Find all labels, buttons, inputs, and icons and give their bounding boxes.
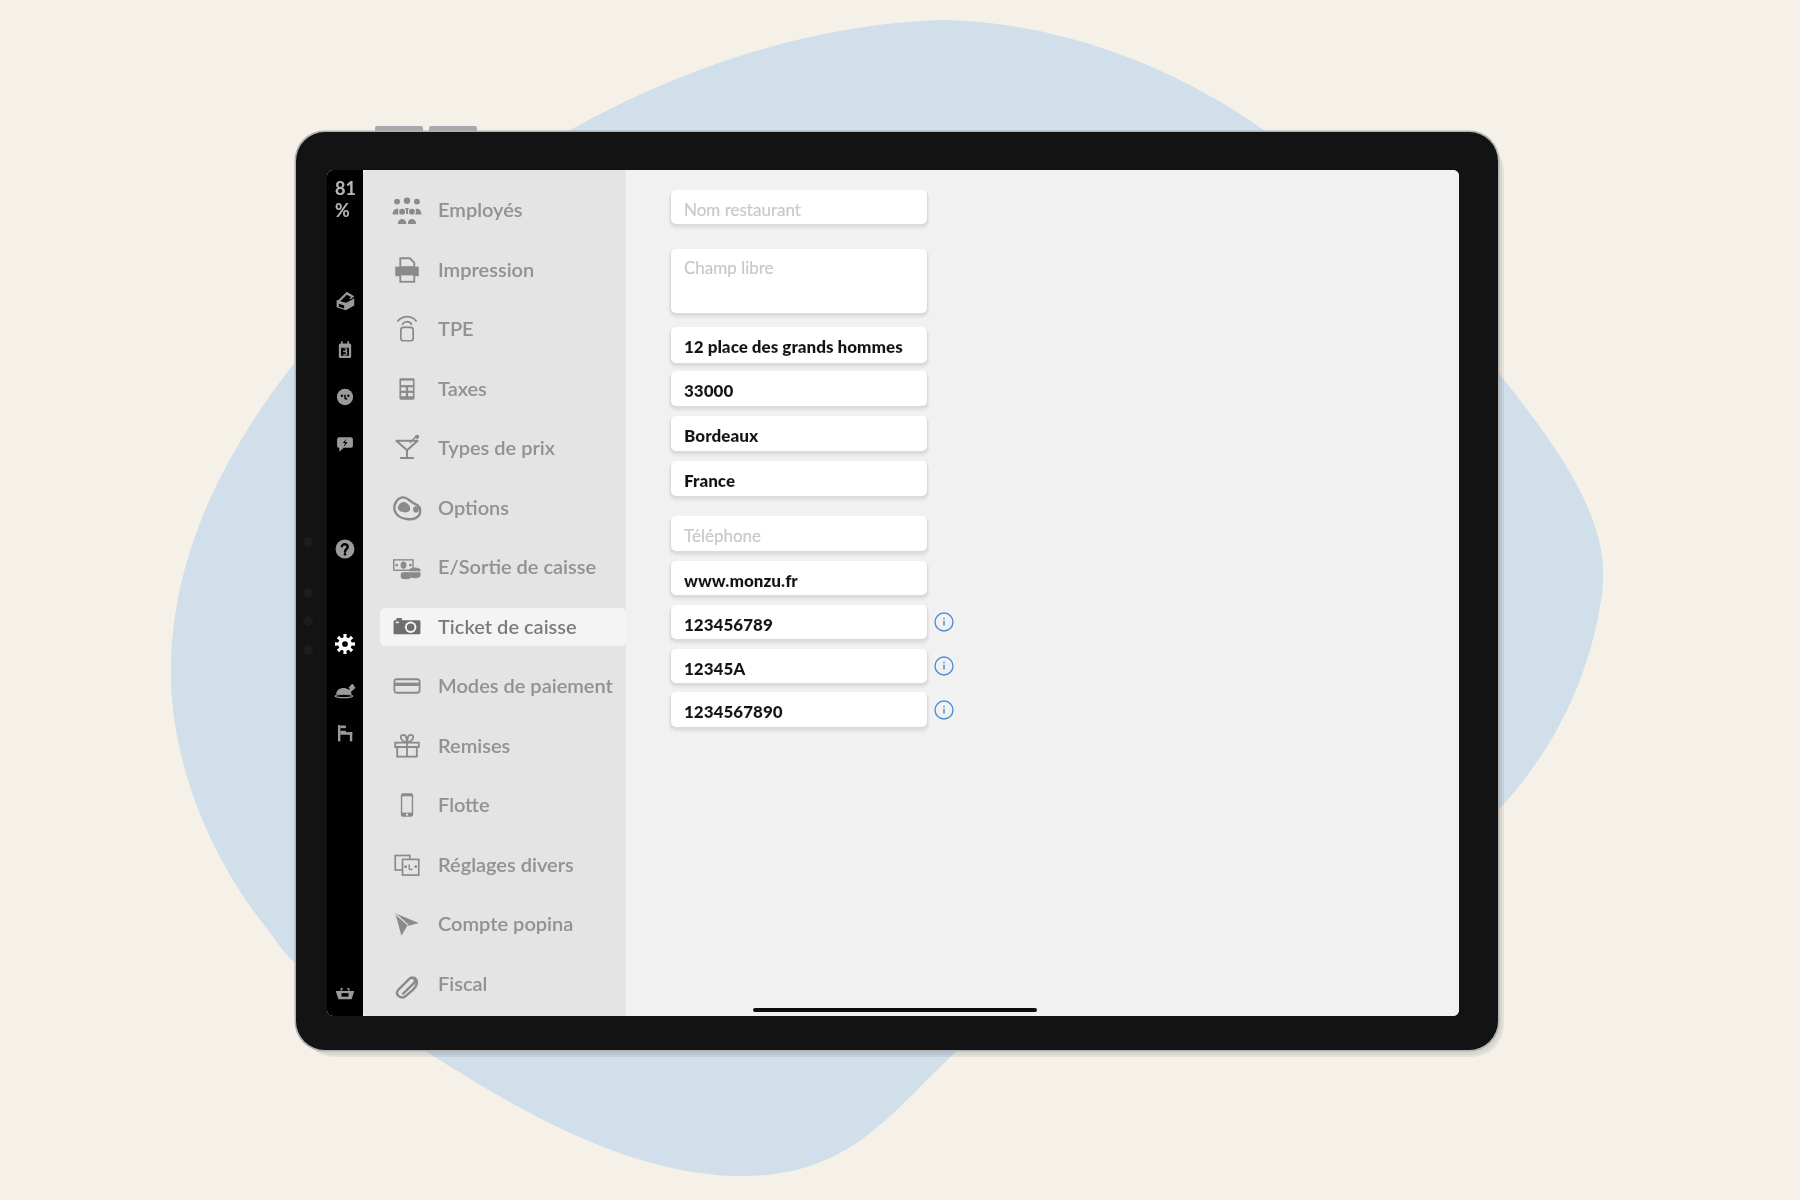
button[interactable]: www.monzu.fr bbox=[671, 561, 927, 595]
staticText: Réglages divers bbox=[438, 852, 574, 876]
button[interactable]: Aide bbox=[334, 538, 356, 560]
button[interactable]: Informations bbox=[934, 612, 954, 632]
staticText: Employés bbox=[438, 197, 523, 221]
staticText: Impression bbox=[438, 257, 535, 281]
staticText: Options bbox=[438, 495, 510, 519]
staticText: Remises bbox=[438, 733, 511, 757]
staticText: 81 bbox=[335, 177, 356, 199]
button[interactable]: France bbox=[671, 461, 927, 496]
staticText: Modes de paiement bbox=[438, 673, 613, 697]
button[interactable]: Messages bbox=[334, 432, 356, 454]
button[interactable]: Options bbox=[363, 489, 626, 527]
button[interactable]: Taxes bbox=[363, 370, 626, 408]
staticText: Compte popina bbox=[438, 911, 574, 935]
button[interactable]: TPE bbox=[363, 310, 626, 348]
button[interactable]: Fiscal bbox=[363, 965, 626, 1003]
button[interactable]: Réglages divers bbox=[363, 846, 626, 884]
button[interactable]: Cuisine bbox=[334, 679, 356, 701]
staticText: Types de prix bbox=[438, 435, 555, 459]
staticText: 12345A bbox=[684, 658, 746, 678]
staticText: 12 place des grands hommes bbox=[684, 336, 903, 356]
staticText: Taxes bbox=[438, 376, 487, 400]
staticText: 1234567890 bbox=[684, 701, 783, 721]
button[interactable]: Informations bbox=[934, 700, 954, 720]
button[interactable]: 12 place des grands hommes bbox=[671, 327, 927, 363]
button[interactable]: 1234567890 bbox=[671, 692, 927, 727]
staticText: Fiscal bbox=[438, 971, 488, 995]
button[interactable]: Compte popina bbox=[363, 905, 626, 943]
button[interactable]: Agenda bbox=[334, 339, 356, 361]
button[interactable]: Modes de paiement bbox=[363, 667, 626, 705]
staticText: Flotte bbox=[438, 792, 490, 816]
staticText: TPE bbox=[438, 316, 474, 340]
staticText: Ticket de caisse bbox=[438, 614, 577, 638]
button[interactable]: Caisse bbox=[334, 290, 356, 312]
button[interactable]: Ticket de caisse bbox=[380, 608, 626, 646]
button[interactable]: Types de prix bbox=[363, 429, 626, 467]
button[interactable]: Salle bbox=[334, 722, 356, 744]
button[interactable]: E/Sortie de caisse bbox=[363, 548, 626, 586]
staticText: Nom restaurant bbox=[684, 199, 801, 219]
staticText: 123456789 bbox=[684, 614, 773, 634]
button[interactable]: Nom restaurant bbox=[671, 190, 927, 224]
button[interactable]: Réglages bbox=[334, 633, 356, 655]
staticText: E/Sortie de caisse bbox=[438, 554, 597, 578]
staticText: France bbox=[684, 470, 736, 490]
button[interactable]: Remises bbox=[363, 727, 626, 765]
button[interactable]: Panier bbox=[334, 983, 356, 1005]
button[interactable]: Clients bbox=[334, 386, 356, 408]
staticText: Bordeaux bbox=[684, 425, 759, 445]
button[interactable]: Téléphone bbox=[671, 516, 927, 551]
button[interactable]: Impression bbox=[363, 251, 626, 289]
staticText: Téléphone bbox=[684, 525, 762, 545]
button[interactable]: Employés bbox=[363, 191, 626, 229]
button[interactable]: 33000 bbox=[671, 371, 927, 406]
button[interactable]: Flotte bbox=[363, 786, 626, 824]
staticText: Champ libre bbox=[684, 257, 774, 277]
staticText: % bbox=[335, 199, 350, 221]
button[interactable]: 12345A bbox=[671, 649, 927, 683]
button[interactable]: Informations bbox=[934, 656, 954, 676]
button[interactable]: Bordeaux bbox=[671, 416, 927, 451]
button[interactable]: Champ libre bbox=[671, 249, 927, 313]
staticText: 33000 bbox=[684, 380, 734, 400]
staticText: www.monzu.fr bbox=[684, 570, 798, 590]
button[interactable]: 123456789 bbox=[671, 605, 927, 639]
